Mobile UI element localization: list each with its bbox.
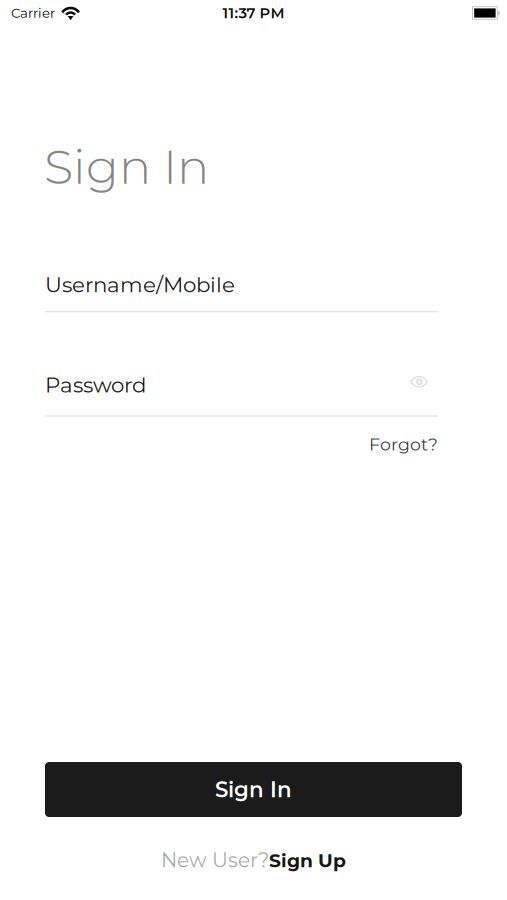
staticText: Password (45, 372, 146, 398)
button[interactable]: Show password (401, 375, 438, 395)
staticText: Carrier (11, 5, 55, 21)
staticText: Sign In (44, 137, 209, 196)
staticText: Username/Mobile (45, 271, 235, 297)
staticText: Forgot? (369, 434, 438, 455)
staticText: New User? (161, 848, 269, 872)
staticText: Sign Up (269, 849, 346, 872)
staticText: 11:37 PM (222, 4, 284, 22)
button[interactable]: Forgot? (369, 431, 438, 458)
button[interactable]: Sign In (45, 762, 462, 817)
staticText: Sign In (215, 776, 292, 802)
button[interactable]: New User? (161, 849, 346, 871)
